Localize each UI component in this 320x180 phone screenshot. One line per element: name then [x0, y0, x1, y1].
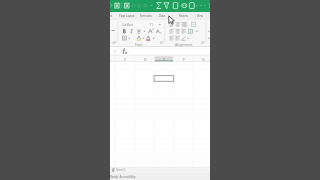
staticText: Alignment: [175, 42, 193, 47]
button[interactable]: Page Layout: [119, 12, 135, 20]
staticText: Review: [179, 14, 188, 18]
button[interactable]: Quick access toolbar: [110, 0, 210, 12]
button[interactable]: Review: [179, 12, 188, 20]
staticText: Font: [135, 42, 143, 47]
staticText: D: [144, 57, 147, 62]
staticText: F: [183, 57, 185, 62]
button[interactable]: Formulas: [140, 12, 152, 20]
staticText: C: [124, 57, 127, 62]
staticText: E: [163, 57, 165, 62]
staticText: rt: [110, 14, 113, 18]
button[interactable]: Data: [159, 12, 165, 20]
staticText: Ready Accessibility:: [110, 175, 137, 179]
staticText: View: [197, 14, 203, 18]
staticText: Sheet1: [116, 168, 125, 172]
button[interactable]: View: [197, 12, 203, 20]
button[interactable]: New sheet: [124, 168, 126, 172]
button[interactable]: rt: [110, 12, 113, 20]
staticText: 11: [149, 22, 154, 27]
staticText: Formulas: [140, 14, 152, 18]
button[interactable]: Ready Accessibility:: [110, 175, 137, 179]
staticText: Calibri: [122, 22, 134, 27]
staticText: Page Layout: [119, 14, 135, 18]
staticText: G: [202, 57, 205, 62]
button[interactable]: Sheet1: [116, 168, 125, 172]
staticText: Data: [159, 14, 165, 18]
staticText: +: [124, 168, 126, 172]
button[interactable]: Worksheet: [110, 62, 210, 167]
